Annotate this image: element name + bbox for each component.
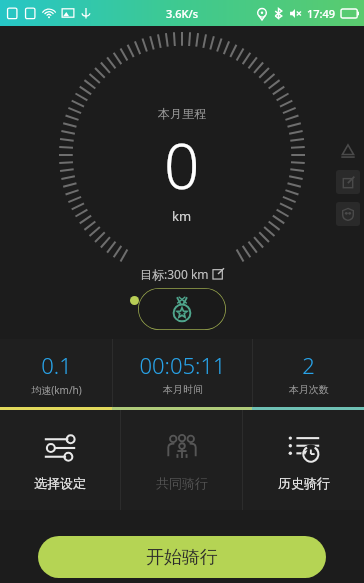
staticText: 3.6K/s bbox=[166, 6, 199, 21]
button[interactable]: Edit bbox=[336, 170, 360, 194]
staticText: 开始骑行 bbox=[146, 546, 218, 569]
staticText: 2 bbox=[302, 350, 315, 380]
button[interactable]: Bike setup bbox=[337, 140, 359, 162]
button[interactable]: 0.1 bbox=[0, 339, 112, 407]
button[interactable]: 选择设定 bbox=[0, 410, 120, 510]
staticText: km bbox=[172, 207, 192, 225]
staticText: 0 bbox=[164, 123, 200, 207]
staticText: 选择设定 bbox=[34, 475, 86, 491]
staticText: 00:05:11 bbox=[139, 350, 226, 380]
button[interactable]: 历史骑行 bbox=[243, 410, 364, 510]
button[interactable]: 00:05:11 bbox=[113, 339, 252, 407]
staticText: 目标:300 km bbox=[140, 266, 209, 282]
staticText: 均速(km/h) bbox=[31, 383, 82, 397]
staticText: 本月里程 bbox=[158, 106, 206, 121]
button[interactable]: 共同骑行 bbox=[121, 410, 242, 510]
staticText: 0.1 bbox=[41, 350, 72, 380]
staticText: 17:49 bbox=[307, 6, 336, 21]
button[interactable]: Achievements bbox=[138, 288, 226, 330]
button[interactable]: 开始骑行 bbox=[38, 536, 326, 578]
staticText: 共同骑行 bbox=[156, 475, 208, 491]
button[interactable]: 2 bbox=[253, 339, 364, 407]
staticText: 本月次数 bbox=[289, 383, 329, 396]
button[interactable]: Health bbox=[336, 202, 360, 226]
button[interactable]: 目标:300 km bbox=[140, 266, 224, 282]
staticText: 历史骑行 bbox=[278, 475, 330, 491]
staticText: 本月时间 bbox=[163, 383, 203, 396]
other: Edit goal bbox=[212, 268, 224, 280]
